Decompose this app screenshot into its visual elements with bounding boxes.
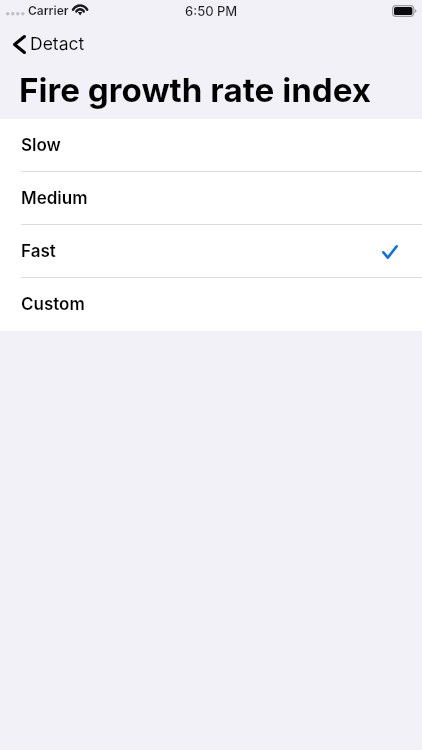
button[interactable]: Slow [0,119,422,172]
button[interactable]: Custom [0,278,422,331]
staticText: 6:50 PM [185,3,238,19]
staticText: Detact [30,33,85,54]
staticText: Fast [21,241,56,262]
staticText: Medium [21,188,88,209]
staticText: Carrier [28,3,69,18]
staticText: Slow [21,135,61,156]
staticText: Custom [21,294,85,315]
other: Selected [382,245,398,259]
button[interactable]: Fast [0,225,422,278]
button[interactable]: Medium [0,172,422,225]
staticText: Fire growth rate index [19,70,372,110]
button[interactable]: Back to Detact [0,28,99,57]
